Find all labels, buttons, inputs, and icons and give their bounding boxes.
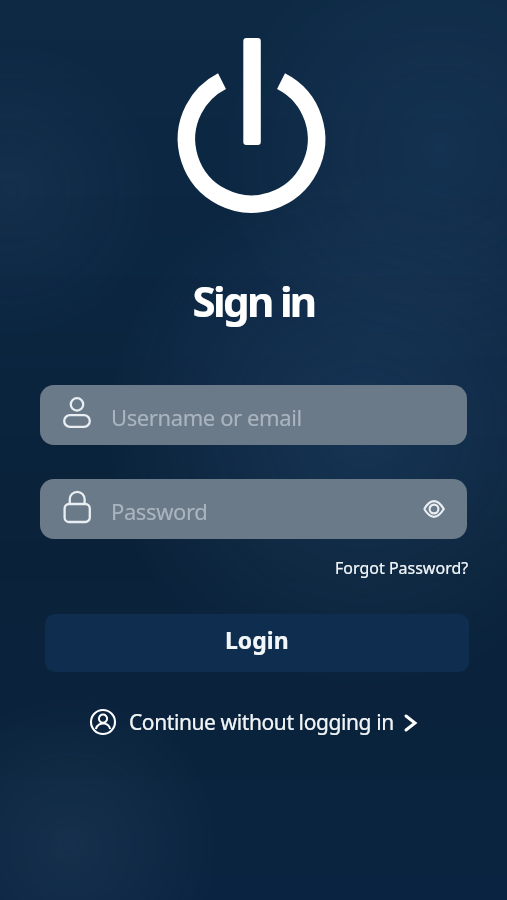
staticText: Sign in — [0, 272, 507, 329]
button[interactable]: Username or email — [40, 385, 467, 445]
staticText: Username or email — [111, 402, 302, 432]
staticText: Password — [111, 496, 208, 526]
button[interactable]: Continue without logging in — [0, 702, 507, 742]
staticText: Login — [225, 624, 289, 655]
button[interactable] — [422, 497, 446, 521]
button[interactable]: Password — [40, 479, 467, 539]
button[interactable]: Forgot Password? — [335, 557, 469, 579]
button[interactable]: Login — [45, 614, 469, 672]
staticText: Continue without logging in — [129, 708, 394, 737]
